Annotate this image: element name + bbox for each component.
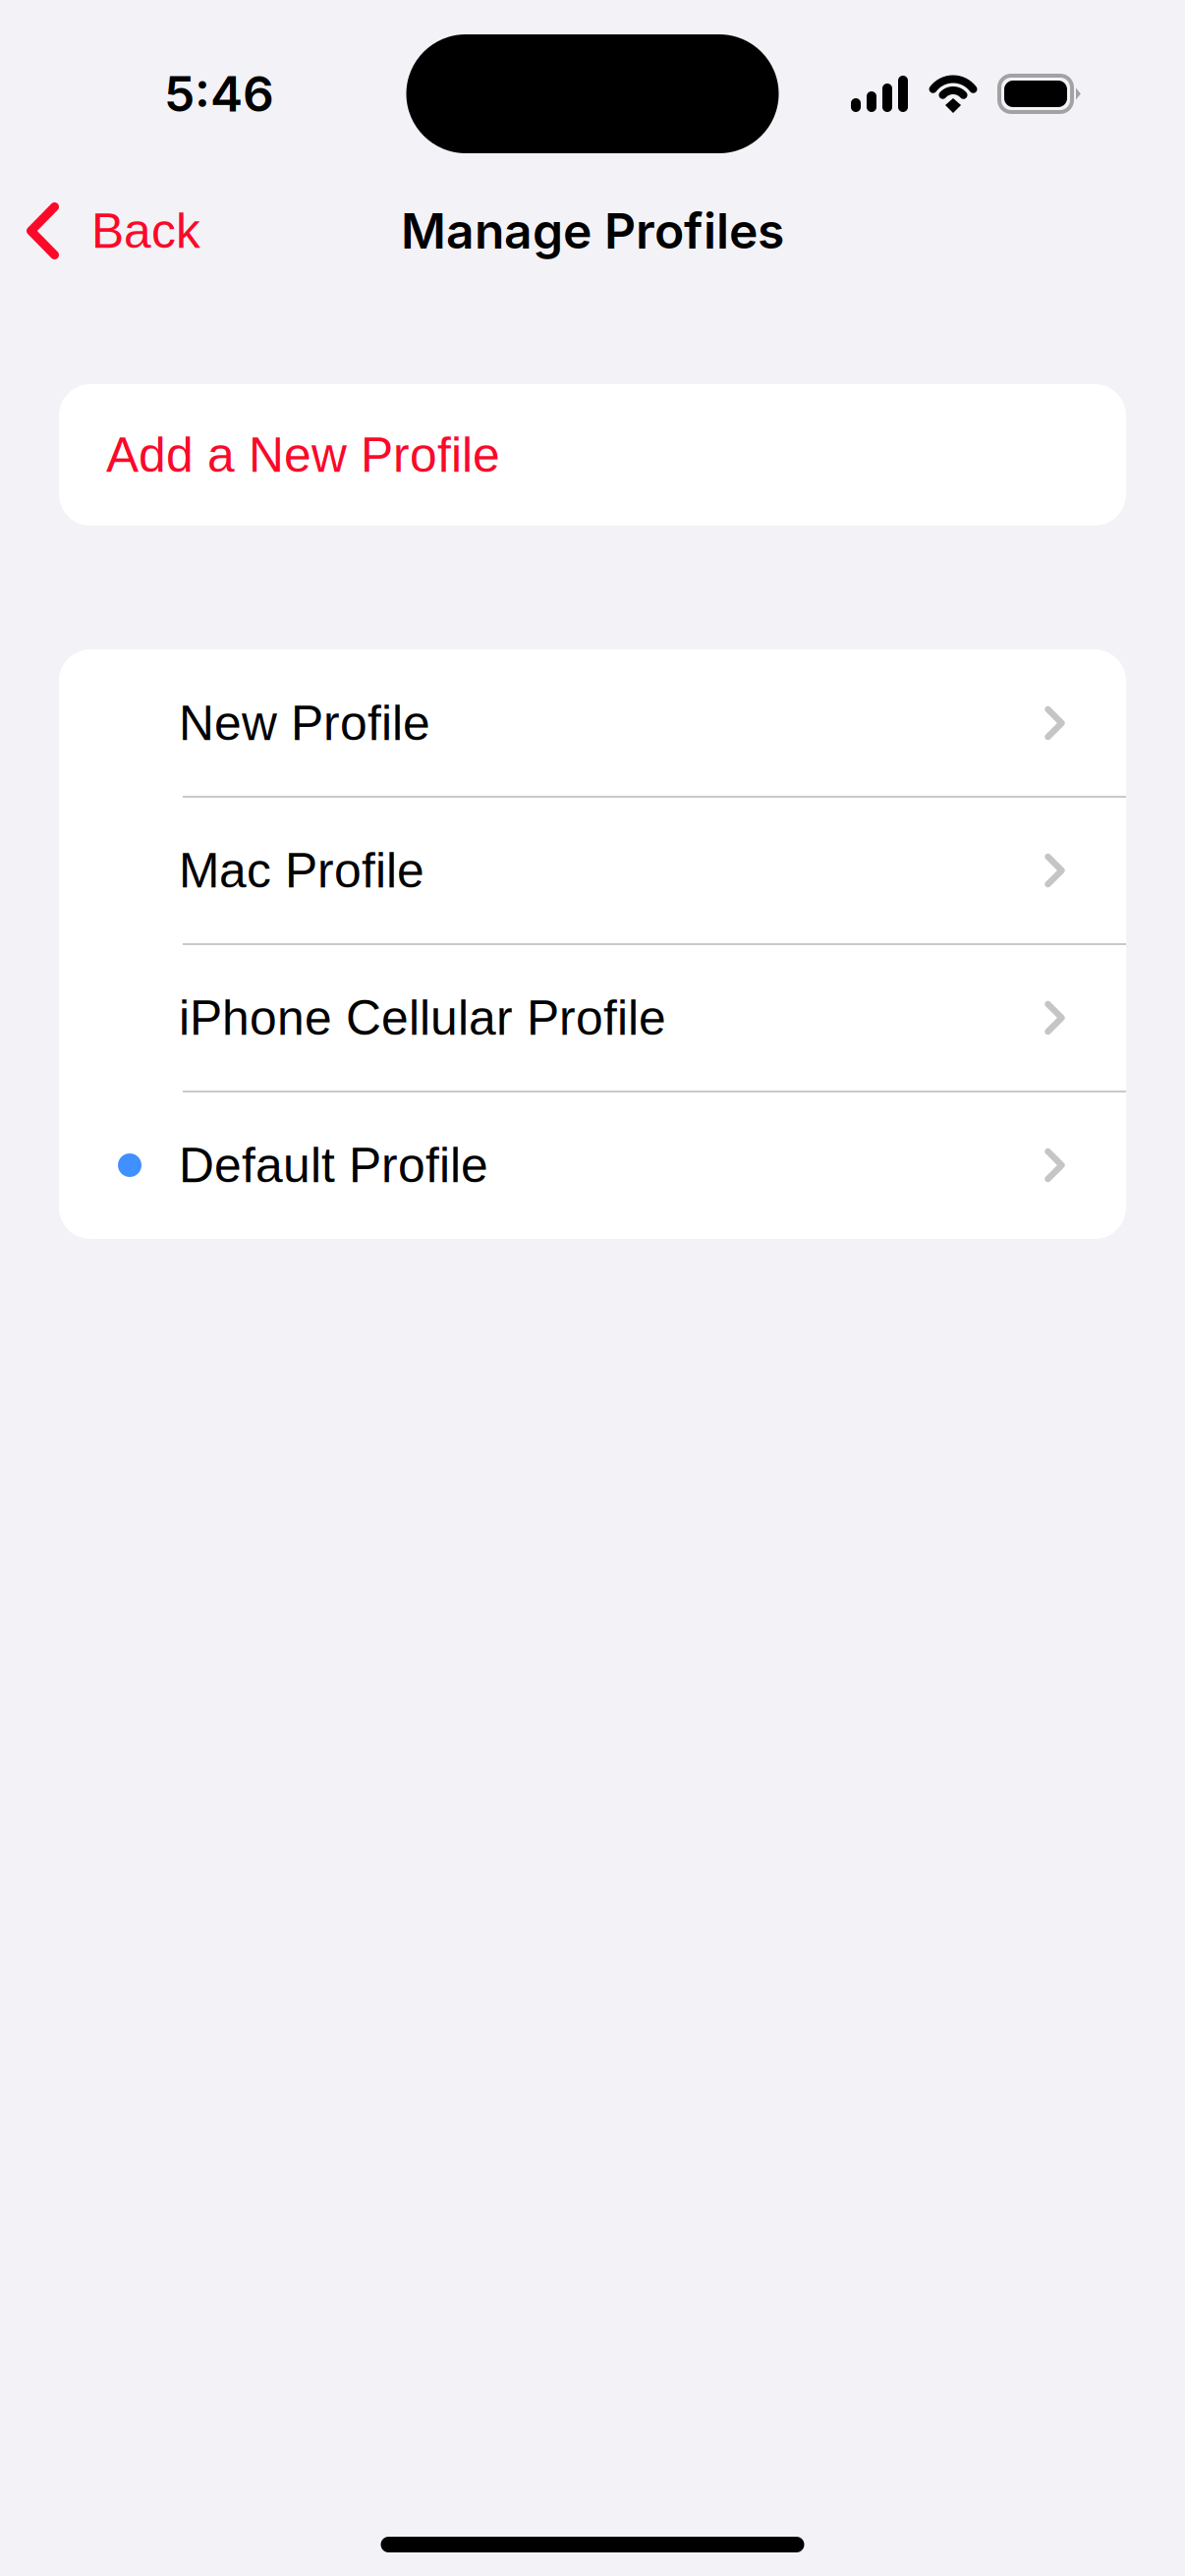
button[interactable]: Mac Profile — [59, 797, 1126, 944]
staticText: 5:46 — [164, 64, 274, 123]
staticText: Add a New Profile — [106, 428, 500, 482]
staticText: Back — [91, 204, 200, 258]
button[interactable]: New Profile — [59, 649, 1126, 797]
staticText: iPhone Cellular Profile — [179, 991, 666, 1045]
staticText: Default Profile — [179, 1138, 488, 1193]
staticText: New Profile — [179, 696, 430, 750]
button[interactable]: Add a New Profile — [59, 384, 1126, 526]
staticText: Manage Profiles — [401, 201, 784, 260]
button[interactable]: Default Profile — [59, 1092, 1126, 1239]
staticText: Mac Profile — [179, 843, 424, 898]
button[interactable]: iPhone Cellular Profile — [59, 944, 1126, 1092]
button[interactable]: Back — [0, 166, 236, 296]
